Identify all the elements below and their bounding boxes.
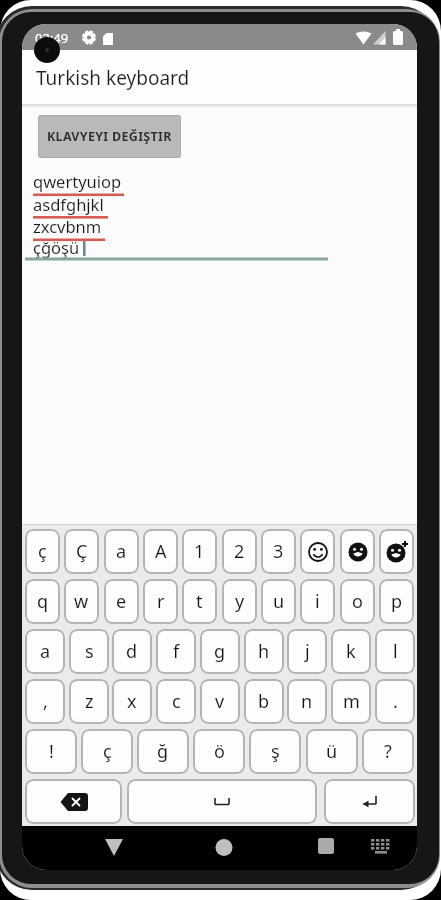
staticText: a	[40, 639, 51, 664]
staticText: ç	[38, 539, 47, 564]
button[interactable]: e	[104, 579, 139, 624]
staticText: d	[126, 639, 138, 664]
staticText: c	[172, 689, 181, 714]
button[interactable]	[340, 529, 375, 574]
staticText: h	[258, 639, 270, 664]
button[interactable]: 3	[261, 529, 296, 574]
button[interactable]: j	[287, 629, 327, 674]
staticText: f	[173, 639, 180, 664]
staticText: zxcvbnm	[33, 215, 102, 237]
staticText: r	[157, 589, 165, 614]
staticText: 1	[194, 539, 205, 564]
staticText: ?	[384, 739, 392, 764]
button[interactable]: o	[340, 579, 375, 624]
staticText: ü	[326, 739, 338, 764]
button[interactable]	[324, 779, 415, 824]
button[interactable]: i	[300, 579, 335, 624]
button[interactable]: ç	[81, 729, 133, 774]
button[interactable]: .	[375, 679, 415, 724]
button[interactable]: m	[331, 679, 371, 724]
button[interactable]	[306, 831, 346, 865]
button[interactable]: 1	[182, 529, 217, 574]
button[interactable]: g	[200, 629, 240, 674]
button[interactable]: 2	[222, 529, 257, 574]
button[interactable]: u	[261, 579, 296, 624]
button[interactable]: t	[182, 579, 217, 624]
button[interactable]: ğ	[137, 729, 189, 774]
staticText: asdfghjkl	[33, 193, 104, 215]
staticText: ğ	[157, 739, 169, 764]
button[interactable]: A	[143, 529, 178, 574]
button[interactable]: x	[112, 679, 152, 724]
staticText: m	[343, 689, 360, 714]
button[interactable]: KLAVYEYI DEĞIŞTIR	[38, 115, 181, 158]
staticText: u	[273, 589, 285, 614]
button[interactable]	[362, 831, 398, 865]
staticText: g	[214, 639, 226, 664]
button[interactable]: c	[156, 679, 196, 724]
button[interactable]	[300, 529, 335, 574]
staticText: ,	[43, 689, 48, 714]
button[interactable]: b	[244, 679, 284, 724]
button[interactable]: ç	[25, 529, 60, 574]
staticText: k	[346, 639, 356, 664]
staticText: p	[391, 589, 403, 614]
button[interactable]: a	[25, 629, 65, 674]
button[interactable]: a	[104, 529, 139, 574]
staticText: l	[393, 639, 398, 664]
button[interactable]: q	[25, 579, 60, 624]
button[interactable]	[94, 831, 134, 865]
button[interactable]: h	[244, 629, 284, 674]
button[interactable]: y	[222, 579, 257, 624]
button[interactable]	[25, 779, 122, 824]
button[interactable]	[127, 779, 317, 824]
button[interactable]: n	[287, 679, 327, 724]
staticText: 02:49	[35, 29, 69, 47]
staticText: ş	[271, 739, 280, 764]
staticText: v	[215, 689, 225, 714]
staticText: ç	[103, 739, 112, 764]
staticText: qwertyuiop	[33, 170, 122, 192]
staticText: çğöşü	[33, 236, 80, 258]
staticText: b	[258, 689, 270, 714]
button[interactable]: !	[25, 729, 77, 774]
button[interactable]: ö	[193, 729, 245, 774]
staticText: ö	[214, 739, 225, 764]
button[interactable]: k	[331, 629, 371, 674]
staticText: Ç	[76, 539, 88, 564]
staticText: s	[85, 639, 94, 664]
button[interactable]: s	[69, 629, 109, 674]
button[interactable]: f	[156, 629, 196, 674]
staticText: w	[74, 589, 89, 614]
staticText: KLAVYEYI DEĞIŞTIR	[47, 128, 172, 145]
button[interactable]: Ç	[64, 529, 99, 574]
staticText: y	[235, 589, 245, 614]
staticText: a	[116, 539, 127, 564]
button[interactable]: z	[69, 679, 109, 724]
button[interactable]: ş	[249, 729, 301, 774]
staticText: x	[127, 689, 137, 714]
button[interactable]: ü	[306, 729, 358, 774]
staticText: n	[301, 689, 313, 714]
staticText: 2	[234, 539, 245, 564]
staticText: o	[352, 589, 363, 614]
button[interactable]	[204, 831, 244, 865]
button[interactable]: d	[112, 629, 152, 674]
staticText: A	[155, 539, 167, 564]
button[interactable]: w	[64, 579, 99, 624]
button[interactable]	[379, 529, 414, 574]
button[interactable]: ,	[25, 679, 65, 724]
staticText: .	[393, 689, 398, 714]
button[interactable]: p	[379, 579, 414, 624]
staticText: Turkish keyboard	[36, 65, 190, 91]
staticText: i	[315, 589, 320, 614]
staticText: q	[37, 589, 49, 614]
staticText: t	[196, 589, 203, 614]
staticText: !	[49, 739, 54, 764]
button[interactable]: r	[143, 579, 178, 624]
staticText: e	[116, 589, 127, 614]
staticText: z	[85, 689, 94, 714]
button[interactable]: ?	[362, 729, 414, 774]
button[interactable]: l	[375, 629, 415, 674]
button[interactable]: v	[200, 679, 240, 724]
